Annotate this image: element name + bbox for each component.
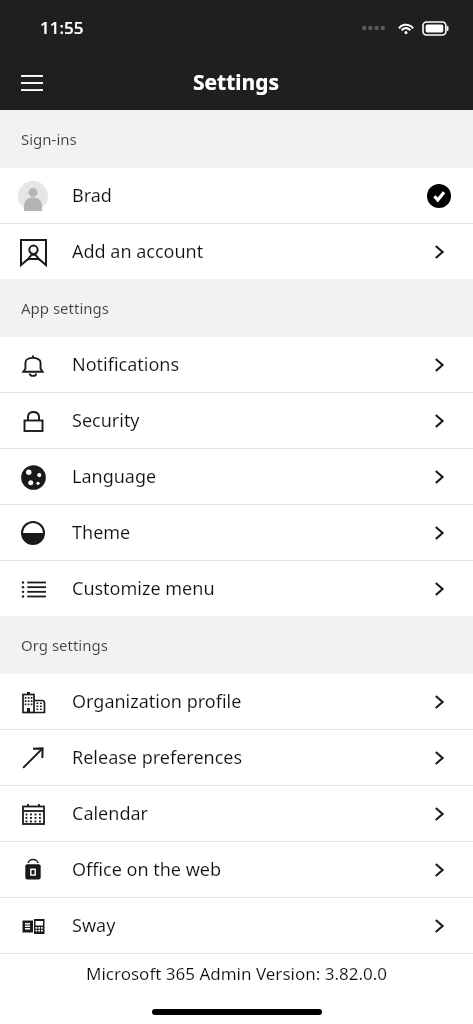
staticText: Customize menu	[72, 576, 427, 601]
button[interactable]: Notifications	[0, 337, 473, 392]
staticText: Microsoft 365 Admin Version: 3.82.0.0	[0, 962, 473, 985]
button[interactable]: Theme	[0, 505, 473, 560]
staticText: Sign-ins	[21, 129, 77, 149]
staticText: Settings	[193, 68, 280, 97]
button[interactable]: Calendar	[0, 786, 473, 841]
button[interactable]: Menu	[10, 61, 54, 105]
button[interactable]: Organization profile	[0, 674, 473, 729]
button[interactable]: Office on the web	[0, 842, 473, 897]
staticText: Release preferences	[72, 745, 427, 770]
staticText: Language	[72, 464, 427, 489]
staticText: 11:55	[40, 16, 84, 39]
staticText: Security	[72, 408, 427, 433]
staticText: Office on the web	[72, 857, 427, 882]
staticText: Theme	[72, 520, 427, 545]
button[interactable]: Customize menu	[0, 561, 473, 616]
staticText: App settings	[21, 298, 109, 318]
button[interactable]: Sway	[0, 898, 473, 953]
button[interactable]: Brad	[0, 168, 473, 223]
staticText: Add an account	[72, 239, 427, 264]
button[interactable]: Release preferences	[0, 730, 473, 785]
staticText: Notifications	[72, 352, 427, 377]
staticText: Sway	[72, 913, 427, 938]
button[interactable]: Language	[0, 449, 473, 504]
staticText: Org settings	[21, 635, 108, 655]
button[interactable]: Security	[0, 393, 473, 448]
button[interactable]: Add an account	[0, 224, 473, 279]
staticText: Organization profile	[72, 689, 427, 714]
staticText: Calendar	[72, 801, 427, 826]
staticText: Brad	[72, 183, 427, 208]
